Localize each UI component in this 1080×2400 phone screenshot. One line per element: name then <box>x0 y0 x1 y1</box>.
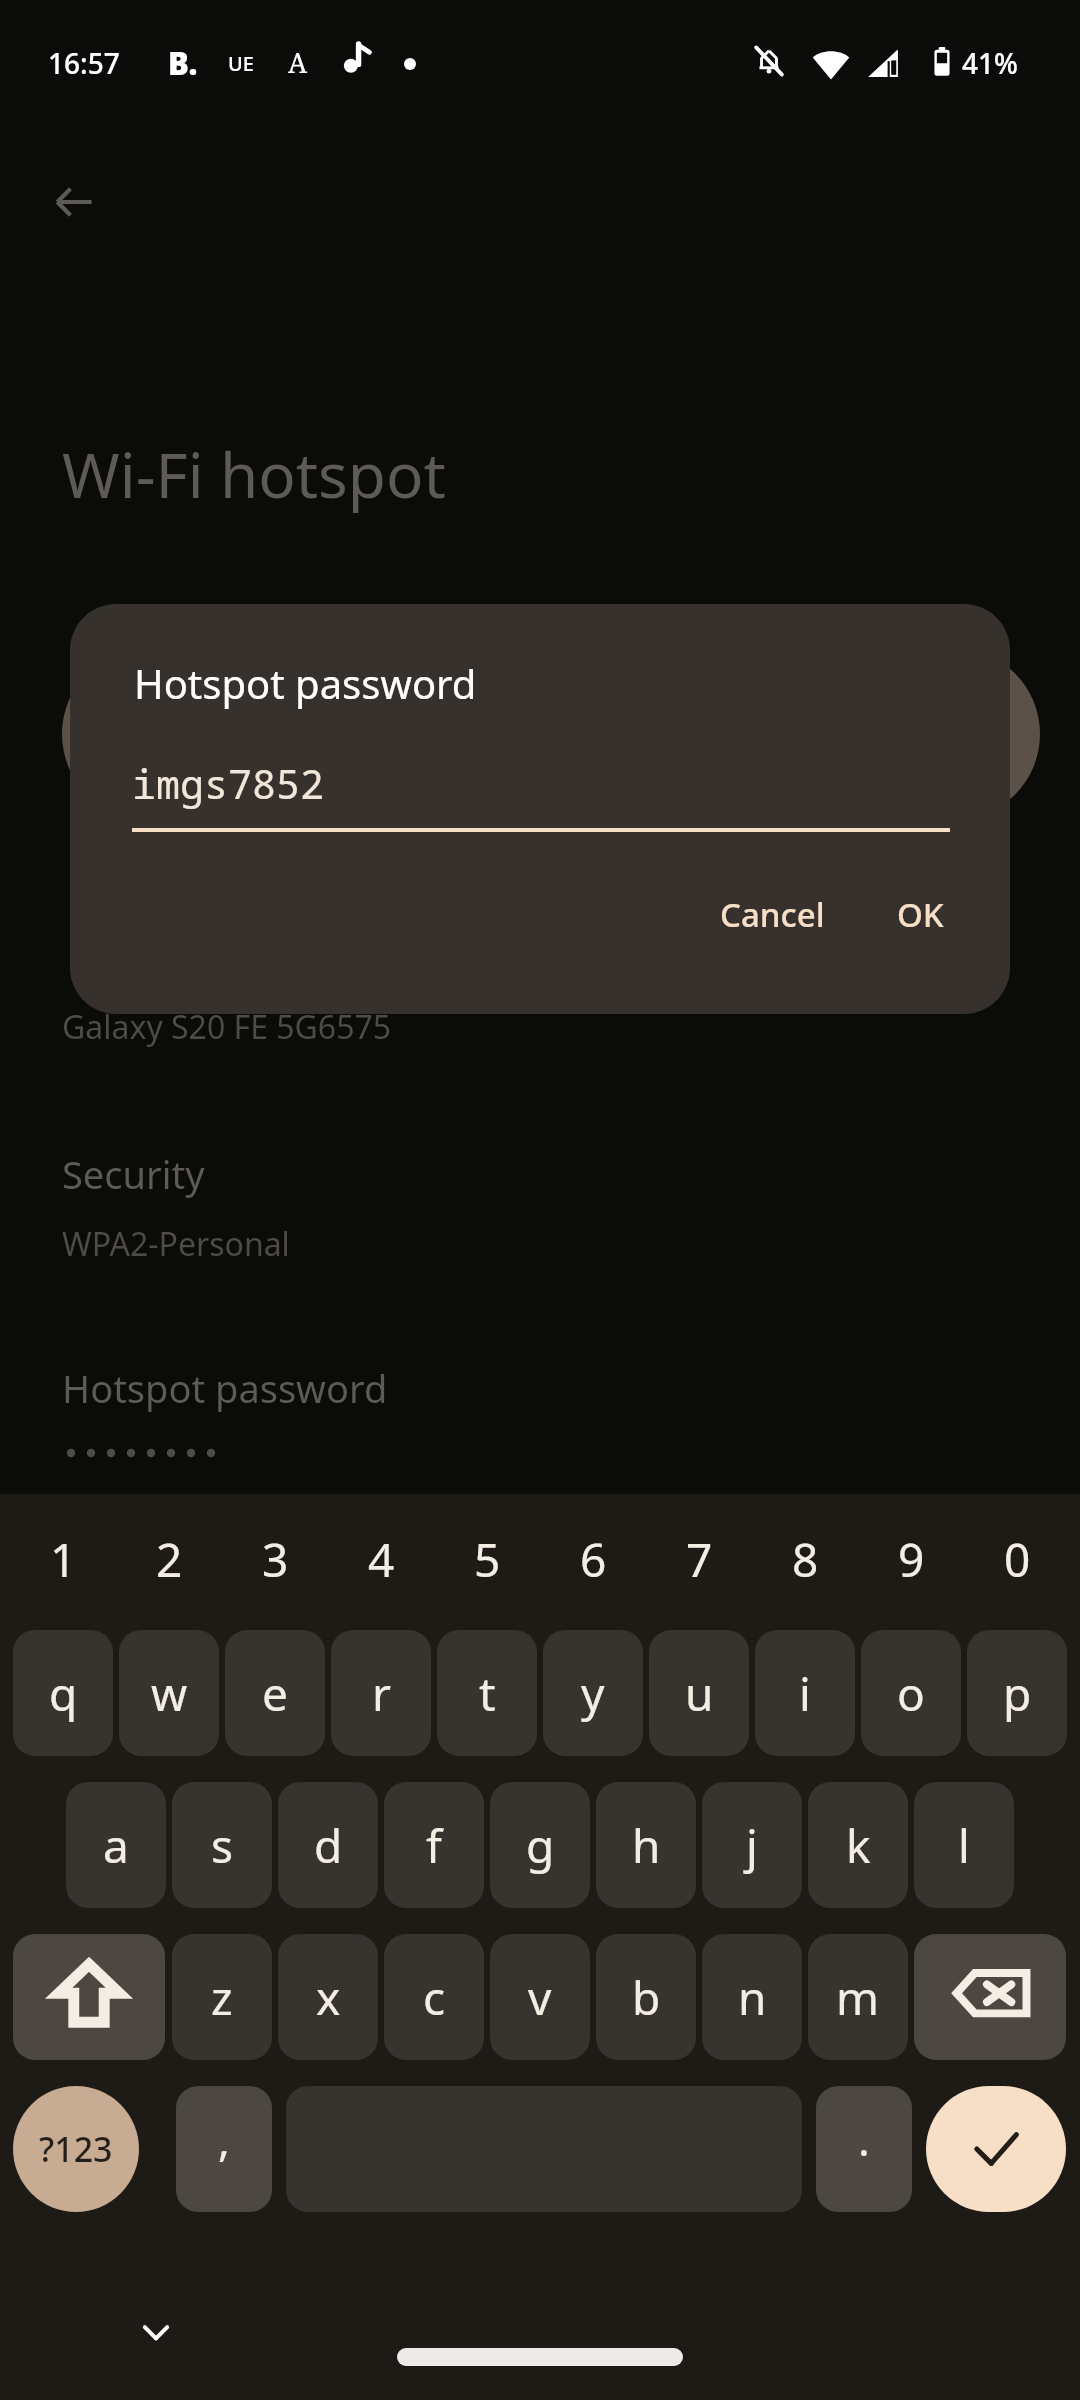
button[interactable]: k <box>808 1782 908 1908</box>
staticText: s <box>211 1814 234 1877</box>
button[interactable]: j <box>702 1782 802 1908</box>
button[interactable]: 1 <box>13 1504 113 1614</box>
staticText: m <box>836 1966 880 2029</box>
staticText: y <box>581 1662 605 1725</box>
staticText: 1 <box>50 1528 77 1591</box>
staticText: 5 <box>474 1528 501 1591</box>
staticText: h <box>632 1814 661 1877</box>
staticText: Galaxy S20 FE 5G6575 <box>62 1005 392 1049</box>
button[interactable]: 4 <box>331 1504 431 1614</box>
staticText: c <box>423 1966 446 2029</box>
button[interactable]: 2 <box>119 1504 219 1614</box>
staticText: Security <box>62 1148 205 1200</box>
button[interactable]: 0 <box>967 1504 1067 1614</box>
staticText: , <box>218 2109 230 2169</box>
staticText: Cancel <box>720 892 825 937</box>
staticText: b <box>632 1966 661 2029</box>
staticText: Hotspot password <box>62 1362 388 1414</box>
staticText: . <box>858 2109 870 2169</box>
staticText: e <box>262 1662 288 1725</box>
staticText: j <box>746 1814 758 1877</box>
staticText: 7 <box>686 1528 713 1591</box>
staticText: a <box>103 1814 129 1877</box>
staticText: Hotspot password <box>134 656 477 710</box>
button[interactable]: 5 <box>437 1504 537 1614</box>
button[interactable]: , <box>176 2086 272 2212</box>
button[interactable]: z <box>172 1934 272 2060</box>
staticText: Wi-Fi hotspot <box>62 432 446 516</box>
staticText: 2 <box>156 1528 183 1591</box>
staticText: p <box>1003 1662 1032 1725</box>
button[interactable]: w <box>119 1630 219 1756</box>
staticText: 16:57 <box>48 44 120 82</box>
staticText: 8 <box>792 1528 819 1591</box>
button[interactable]: x <box>278 1934 378 2060</box>
button[interactable]: Shift <box>13 1934 165 2060</box>
button[interactable]: . <box>816 2086 912 2212</box>
staticText: imgs7852 <box>132 756 324 810</box>
button[interactable]: t <box>437 1630 537 1756</box>
button[interactable]: h <box>596 1782 696 1908</box>
button[interactable]: Cancel <box>698 876 847 953</box>
button[interactable] <box>62 648 1040 820</box>
staticText: v <box>528 1966 552 2029</box>
button[interactable]: Backspace <box>914 1934 1066 2060</box>
staticText: t <box>479 1662 496 1725</box>
button[interactable]: u <box>649 1630 749 1756</box>
button[interactable]: 6 <box>543 1504 643 1614</box>
staticText: z <box>211 1966 233 2029</box>
button[interactable]: y <box>543 1630 643 1756</box>
button[interactable]: e <box>225 1630 325 1756</box>
button[interactable]: a <box>66 1782 166 1908</box>
button[interactable]: s <box>172 1782 272 1908</box>
button[interactable]: l <box>914 1782 1014 1908</box>
staticText: WPA2-Personal <box>62 1222 290 1266</box>
button[interactable]: Hide keyboard <box>120 2296 192 2368</box>
button[interactable]: 9 <box>861 1504 961 1614</box>
button[interactable]: OK <box>875 876 966 953</box>
button[interactable]: 8 <box>755 1504 855 1614</box>
button[interactable]: q <box>13 1630 113 1756</box>
button[interactable]: g <box>490 1782 590 1908</box>
button[interactable]: m <box>808 1934 908 2060</box>
button[interactable]: n <box>702 1934 802 2060</box>
staticText: 4 <box>368 1528 395 1591</box>
staticText: i <box>799 1662 811 1725</box>
button[interactable]: c <box>384 1934 484 2060</box>
staticText: 9 <box>898 1528 925 1591</box>
button[interactable]: f <box>384 1782 484 1908</box>
button[interactable]: Back <box>38 166 110 238</box>
staticText: q <box>49 1662 78 1725</box>
staticText: ?123 <box>39 2126 113 2172</box>
button[interactable]: ?123 <box>13 2086 139 2212</box>
staticText: d <box>314 1814 343 1877</box>
staticText: B. <box>168 42 198 84</box>
staticText: 0 <box>1004 1528 1031 1591</box>
button[interactable]: Enter <box>926 2086 1066 2212</box>
staticText: 3 <box>262 1528 289 1591</box>
button[interactable]: i <box>755 1630 855 1756</box>
staticText: u <box>685 1662 714 1725</box>
button[interactable]: d <box>278 1782 378 1908</box>
button[interactable]: 3 <box>225 1504 325 1614</box>
staticText: UE <box>228 50 254 77</box>
staticText: w <box>151 1662 188 1725</box>
button[interactable]: p <box>967 1630 1067 1756</box>
staticText: k <box>846 1814 871 1877</box>
button[interactable]: b <box>596 1934 696 2060</box>
staticText: r <box>372 1662 391 1725</box>
button[interactable]: 7 <box>649 1504 749 1614</box>
staticText: g <box>526 1814 555 1877</box>
staticText: x <box>316 1966 341 2029</box>
staticText: l <box>958 1814 970 1877</box>
staticText: 6 <box>580 1528 607 1591</box>
staticText: 41% <box>962 44 1018 82</box>
button[interactable]: r <box>331 1630 431 1756</box>
staticText: o <box>897 1662 925 1725</box>
button[interactable]: o <box>861 1630 961 1756</box>
staticText: f <box>426 1814 442 1877</box>
staticText: n <box>738 1966 767 2029</box>
staticText: A <box>288 44 308 81</box>
button[interactable]: v <box>490 1934 590 2060</box>
